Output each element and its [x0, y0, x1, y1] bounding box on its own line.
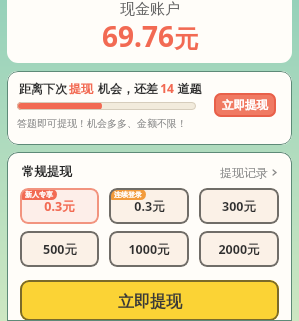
- button[interactable]: 提现记录: [220, 165, 279, 180]
- staticText: 500元: [43, 241, 77, 258]
- staticText: 现金账户: [120, 0, 180, 19]
- button[interactable]: 0.3元: [109, 188, 189, 224]
- staticText: 69.76: [102, 17, 174, 55]
- button[interactable]: 300元: [199, 188, 279, 224]
- button[interactable]: 500元: [20, 231, 99, 267]
- button[interactable]: 2000元: [199, 231, 279, 267]
- staticText: 0.3元: [44, 198, 75, 215]
- staticText: 常规提现: [22, 164, 72, 180]
- button[interactable]: 1000元: [109, 231, 189, 267]
- staticText: 立即提现: [222, 98, 268, 112]
- staticText: 0.3元: [134, 198, 165, 215]
- staticText: 立即提现: [118, 292, 182, 312]
- button[interactable]: 立即提现: [20, 280, 279, 321]
- staticText: 连续登录: [114, 190, 142, 199]
- staticText: 提现记录: [220, 165, 268, 180]
- staticText: 道题: [174, 80, 202, 96]
- staticText: 14: [160, 80, 174, 96]
- button[interactable]: 立即提现: [214, 93, 276, 117]
- button[interactable]: 0.3元: [20, 188, 99, 224]
- staticText: 提现: [69, 81, 93, 96]
- staticText: 答题即可提现！机会多多、金额不限！: [17, 117, 187, 130]
- staticText: 2000元: [218, 241, 260, 258]
- staticText: 机会，还差: [93, 80, 160, 96]
- staticText: 距离下次: [17, 80, 69, 96]
- staticText: 元: [174, 24, 198, 54]
- staticText: 新人专享: [25, 190, 53, 199]
- staticText: 300元: [222, 198, 256, 215]
- staticText: 1000元: [128, 241, 170, 258]
